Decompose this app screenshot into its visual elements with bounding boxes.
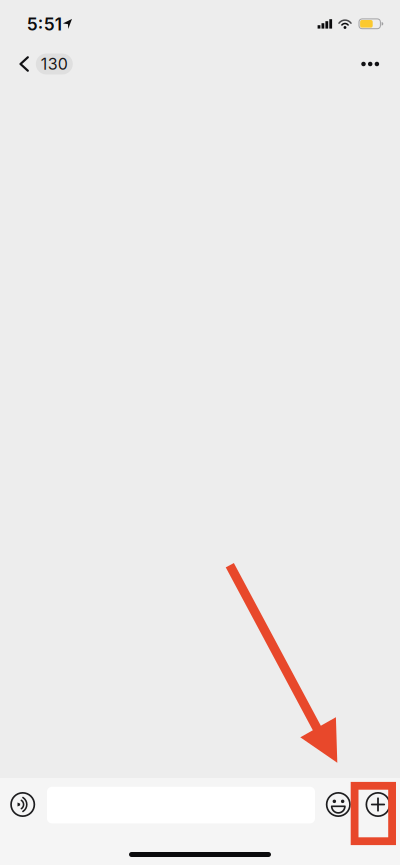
button[interactable]: 130 bbox=[0, 44, 85, 84]
button[interactable]: More bbox=[343, 44, 397, 84]
button[interactable]: Emoji bbox=[316, 778, 361, 831]
staticText: 130 bbox=[41, 54, 68, 74]
button[interactable]: Voice message bbox=[0, 778, 45, 831]
staticText: 5:51 bbox=[27, 14, 62, 35]
button[interactable]: More options bbox=[355, 778, 400, 831]
